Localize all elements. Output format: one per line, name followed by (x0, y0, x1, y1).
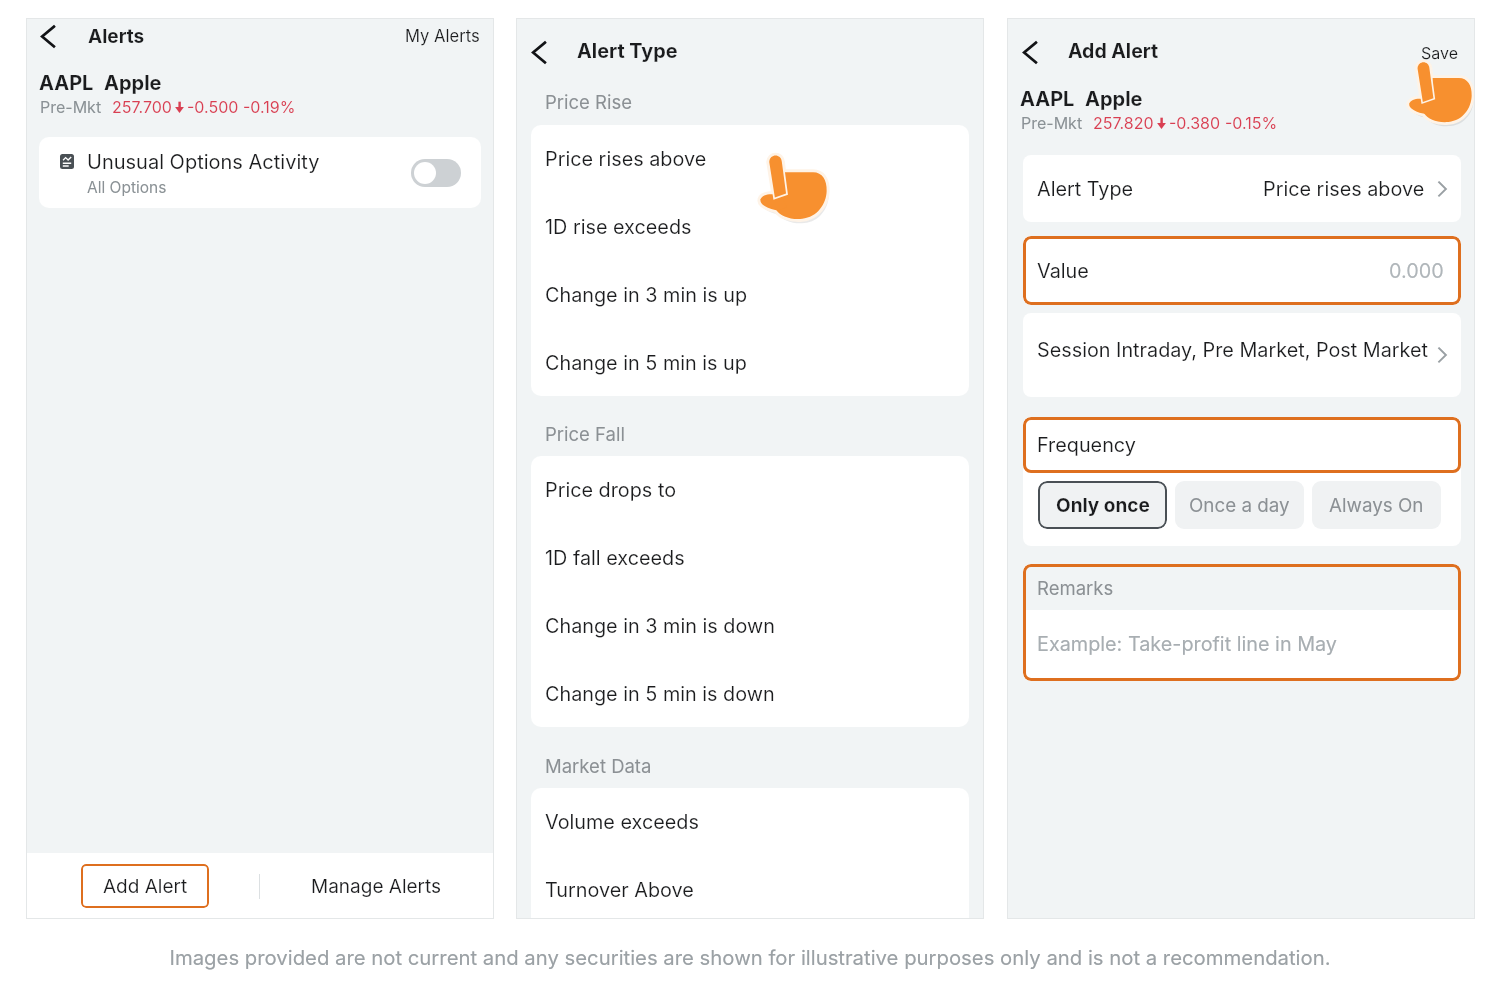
staticText: Change in 5 min is down (545, 682, 775, 706)
button[interactable]: Remarks (1023, 564, 1461, 681)
button[interactable]: Manage Alerts (303, 864, 503, 908)
staticText: Add Alert (103, 875, 188, 898)
button[interactable]: Add Alert (81, 864, 209, 908)
button[interactable]: 1D fall exceeds (531, 524, 969, 592)
staticText: Price drops to (545, 478, 677, 502)
staticText: 1D rise exceeds (545, 215, 692, 239)
button[interactable]: Change in 3 min is up (531, 261, 969, 329)
button[interactable]: Save (1415, 37, 1465, 68)
staticText: AAPL (39, 71, 94, 95)
staticText: -0.380 (1169, 113, 1221, 132)
staticText: Session Intraday, Pre Market, Post Marke… (1037, 338, 1429, 362)
button[interactable]: Back (524, 37, 554, 67)
staticText: Price Fall (545, 423, 625, 445)
staticText: Price rises above (545, 147, 707, 171)
staticText: Change in 5 min is up (545, 351, 747, 375)
staticText: Pre-Mkt (1021, 113, 1083, 132)
staticText: Remarks (1037, 577, 1114, 599)
staticText: Images provided are not current and any … (0, 945, 1500, 970)
staticText: Change in 3 min is down (545, 614, 775, 638)
button[interactable]: Price drops to (531, 456, 969, 524)
staticText: -0.19% (243, 97, 296, 116)
staticText: Apple (104, 71, 162, 95)
staticText: All Options (87, 178, 167, 197)
staticText: Example: Take-profit line in May (1037, 632, 1337, 656)
staticText: Alert Type (1037, 177, 1134, 201)
button[interactable]: Only once (1038, 481, 1167, 529)
button[interactable]: Once a day (1175, 481, 1304, 529)
staticText: Value (1037, 259, 1089, 283)
button[interactable]: Volume exceeds (531, 788, 969, 856)
staticText: Frequency (1037, 433, 1136, 457)
staticText: Always On (1329, 494, 1424, 517)
staticText: Only once (1056, 494, 1150, 517)
staticText: Price Rise (545, 91, 633, 113)
button[interactable]: Change in 3 min is down (531, 592, 969, 660)
staticText: Change in 3 min is up (545, 283, 748, 307)
button[interactable]: Back (33, 21, 63, 51)
staticText: Add Alert (1068, 39, 1159, 63)
staticText: Apple (1085, 87, 1143, 111)
staticText: Volume exceeds (545, 810, 699, 834)
button[interactable]: 1D rise exceeds (531, 193, 969, 261)
staticText: Once a day (1189, 494, 1290, 517)
button[interactable]: Session Intraday, Pre Market, Post Marke… (1023, 313, 1461, 397)
button[interactable]: Back (1015, 37, 1045, 67)
staticText: Turnover Above (545, 878, 694, 902)
staticText: AAPL (1020, 87, 1075, 111)
button[interactable]: Turnover Above (531, 856, 969, 924)
staticText: Price rises above (1263, 177, 1425, 201)
button[interactable]: Change in 5 min is down (531, 660, 969, 727)
button[interactable]: Change in 5 min is up (531, 329, 969, 396)
staticText: 257.820 (1093, 113, 1154, 132)
staticText: Manage Alerts (311, 875, 442, 898)
staticText: Market Data (545, 755, 652, 777)
staticText: -0.500 (187, 97, 239, 116)
staticText: -0.15% (1225, 113, 1278, 132)
staticText: My Alerts (405, 26, 480, 46)
staticText: Pre-Mkt (40, 97, 102, 116)
staticText: Alert Type (577, 39, 678, 63)
button[interactable]: My Alerts (399, 20, 486, 52)
button[interactable]: Toggle Unusual Options Activity (411, 159, 461, 187)
button[interactable]: Value (1023, 236, 1461, 305)
button[interactable]: Price rises above (531, 125, 969, 193)
button[interactable]: Always On (1312, 481, 1441, 529)
staticText: Save (1421, 43, 1459, 62)
button[interactable]: Unusual Options Activity (39, 137, 481, 208)
staticText: Alerts (88, 25, 145, 48)
staticText: 1D fall exceeds (545, 546, 685, 570)
button[interactable]: Alert Type (1023, 155, 1461, 222)
button[interactable]: Frequency (1023, 417, 1461, 473)
staticText: Unusual Options Activity (87, 150, 320, 174)
staticText: 257.700 (112, 97, 172, 116)
staticText: 0.000 (1389, 259, 1444, 283)
